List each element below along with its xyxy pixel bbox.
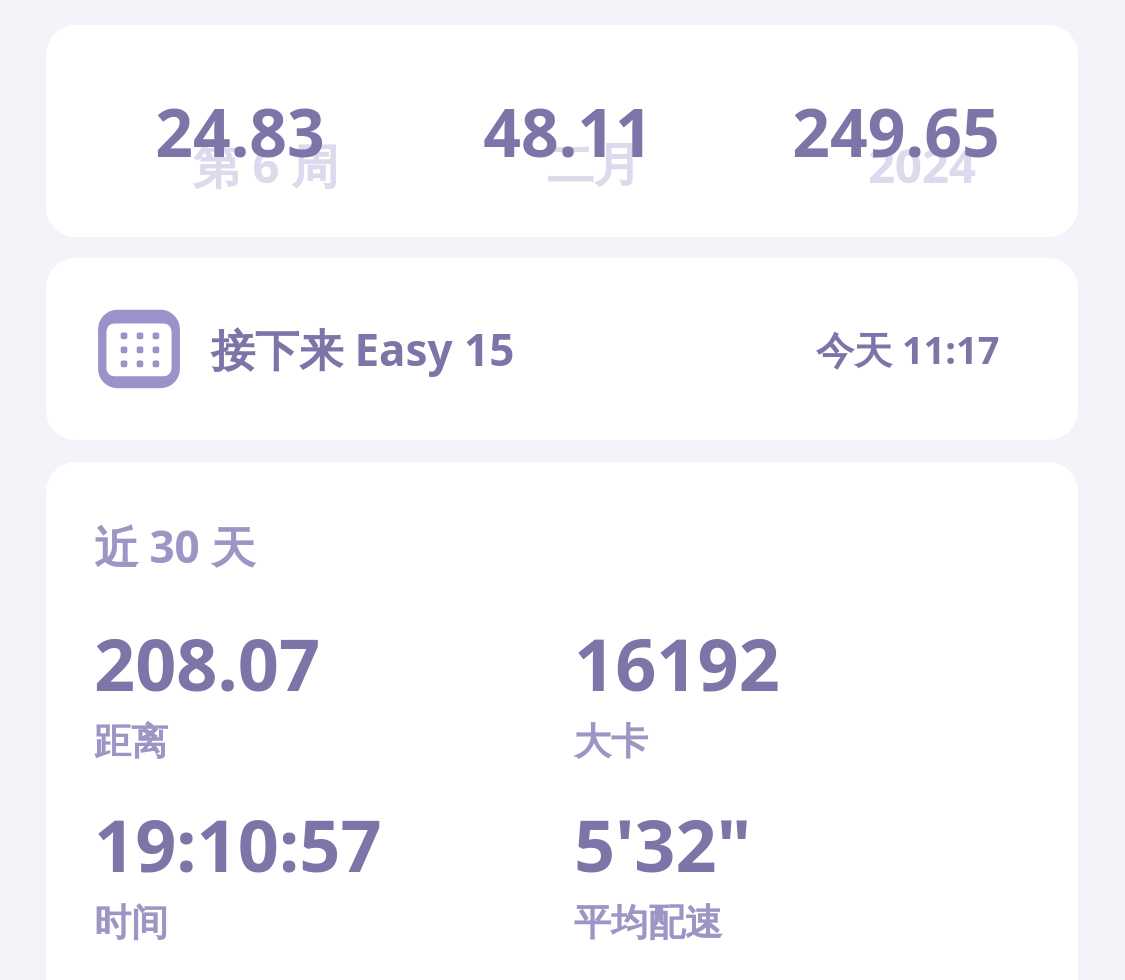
staticText: 近 30 天 <box>94 516 256 576</box>
staticText: 16192 <box>574 614 780 712</box>
staticText: 接下来 Easy 15 <box>211 319 515 379</box>
staticText: 19:10:57 <box>94 795 382 893</box>
staticText: 时间 <box>94 899 168 946</box>
staticText: 24.83 <box>155 86 325 176</box>
staticText: 平均配速 <box>574 899 722 946</box>
other: Calendar <box>95 305 183 393</box>
staticText: 48.11 <box>483 86 653 176</box>
staticText: 第 6 周 <box>193 133 339 197</box>
staticText: 2024 <box>868 133 976 197</box>
staticText: 大卡 <box>574 718 648 765</box>
staticText: 208.07 <box>94 614 321 712</box>
staticText: 距离 <box>94 718 168 765</box>
button[interactable]: 近 30 天 <box>46 462 1078 980</box>
staticText: 5'32" <box>574 795 752 893</box>
button[interactable]: 第 6 周 <box>46 25 1078 237</box>
staticText: 二月 <box>547 136 641 195</box>
button[interactable]: Calendar <box>46 258 1078 440</box>
staticText: 今天 11:17 <box>816 323 1000 375</box>
staticText: 249.65 <box>792 86 1000 176</box>
